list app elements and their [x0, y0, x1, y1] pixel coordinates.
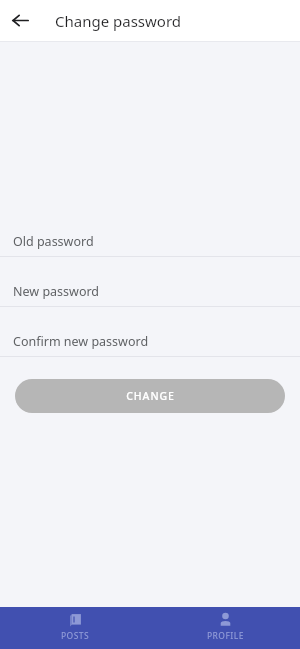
- staticText: Confirm new password: [13, 333, 149, 350]
- button[interactable]: New password: [0, 257, 300, 307]
- button[interactable]: Confirm new password: [0, 307, 300, 357]
- staticText: PROFILE: [207, 630, 244, 642]
- staticText: CHANGE: [126, 389, 175, 403]
- button[interactable]: CHANGE: [15, 379, 285, 413]
- button[interactable]: Old password: [0, 207, 300, 257]
- button[interactable]: PROFILE: [150, 607, 300, 649]
- staticText: Change password: [55, 11, 182, 31]
- staticText: Old password: [13, 233, 94, 250]
- staticText: New password: [13, 283, 100, 300]
- staticText: POSTS: [61, 630, 89, 642]
- button[interactable]: POSTS: [0, 607, 150, 649]
- button[interactable]: Back: [0, 0, 41, 41]
